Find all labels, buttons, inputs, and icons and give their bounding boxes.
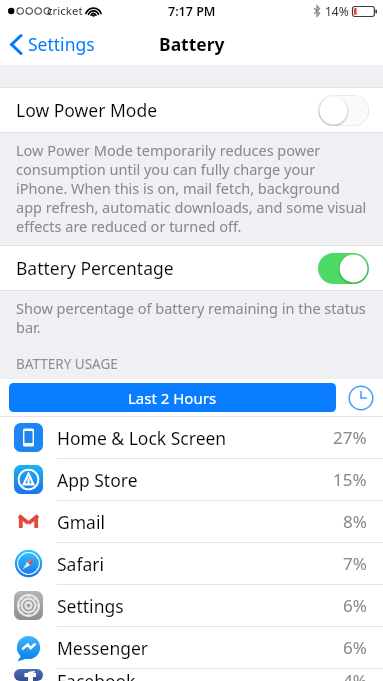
staticText: App Store [57, 468, 138, 492]
staticText: Messenger [57, 636, 149, 660]
button[interactable]: Facebook [0, 669, 383, 681]
staticText: 14% [325, 3, 349, 19]
staticText: Gmail [57, 510, 105, 534]
staticText: Home & Lock Screen [57, 426, 227, 450]
staticText: Last 2 Hours [128, 388, 217, 408]
staticText: Safari [57, 552, 105, 576]
staticText: Battery [159, 32, 225, 56]
button[interactable]: Messenger [0, 627, 383, 668]
button[interactable]: Battery Percentage [0, 246, 383, 290]
button[interactable]: App Store [0, 459, 383, 500]
staticText: 7:17 PM [168, 3, 216, 20]
staticText: 7% [343, 552, 367, 575]
staticText: 27% [333, 426, 367, 449]
staticText: cricket [47, 3, 83, 19]
button[interactable]: Last 2 Hours [9, 383, 336, 412]
staticText: 8% [343, 510, 367, 533]
staticText: 4% [343, 669, 367, 681]
button[interactable]: Home & Lock Screen [0, 417, 383, 458]
button[interactable]: Safari [0, 543, 383, 584]
staticText: 6% [343, 594, 367, 617]
staticText: Facebook [57, 669, 136, 681]
button[interactable]: Low Power Mode [0, 88, 383, 132]
button[interactable]: Settings [0, 585, 383, 626]
staticText: 6% [343, 636, 367, 659]
button[interactable]: On [318, 253, 369, 284]
staticText: Low Power Mode [16, 98, 158, 122]
button[interactable]: Off [318, 95, 369, 126]
staticText: Low Power Mode temporarily reduces power… [16, 140, 367, 236]
button[interactable]: Show time [348, 385, 374, 411]
staticText: Battery Percentage [16, 256, 174, 280]
staticText: Show percentage of battery remaining in … [16, 298, 367, 337]
staticText: 15% [333, 468, 367, 491]
staticText: Settings [28, 32, 95, 56]
button[interactable]: Settings [6, 28, 99, 60]
staticText: BATTERY USAGE [16, 355, 118, 373]
button[interactable]: Gmail [0, 501, 383, 542]
staticText: Settings [57, 594, 124, 618]
